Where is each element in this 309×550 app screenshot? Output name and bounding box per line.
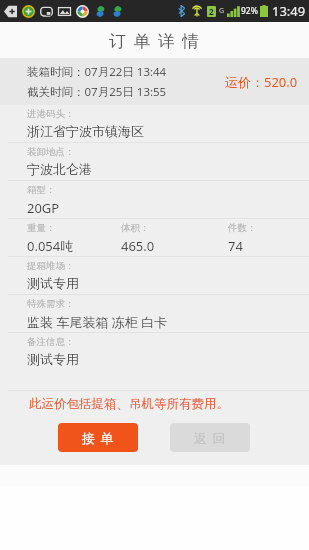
staticText: 订 单 详 情	[109, 29, 201, 52]
staticText: 特殊需求：	[27, 298, 75, 310]
button[interactable]: 返 回	[170, 423, 250, 452]
staticText: 返 回	[194, 429, 227, 447]
staticText: 重量：	[27, 222, 56, 234]
staticText: G	[219, 6, 225, 16]
staticText: 测试专用	[27, 351, 79, 367]
button[interactable]: 备注信息：	[0, 333, 309, 370]
staticText: 监装 车尾装箱 冻柜 白卡	[27, 313, 168, 331]
staticText: 2	[209, 6, 214, 17]
staticText: 此运价包括提箱、吊机等所有费用。	[29, 396, 229, 412]
button[interactable]: 特殊需求：	[0, 295, 309, 332]
button[interactable]: 装卸地点：	[0, 143, 309, 180]
staticText: 体积：	[121, 222, 150, 234]
button[interactable]: 提箱堆场：	[0, 257, 309, 294]
staticText: 装箱时间：07月22日 13:44	[27, 64, 167, 80]
button[interactable]: 重量：	[0, 219, 309, 256]
staticText: 备注信息：	[27, 336, 75, 348]
staticText: 箱型：	[27, 184, 56, 196]
button[interactable]: 进港码头：	[0, 105, 309, 142]
staticText: 浙江省宁波市镇海区	[27, 123, 144, 139]
staticText: 截关时间：07月25日 13:55	[27, 84, 167, 100]
staticText: 接 单	[82, 429, 115, 447]
staticText: 0.054吨	[27, 237, 74, 255]
staticText: 74	[228, 237, 243, 255]
staticText: 92%	[241, 5, 258, 17]
button[interactable]: 箱型：	[0, 181, 309, 218]
staticText: 运价：520.0	[225, 73, 298, 91]
staticText: 装卸地点：	[27, 146, 75, 158]
staticText: 测试专用	[27, 275, 79, 291]
staticText: 20GP	[27, 199, 60, 217]
staticText: 13:49	[272, 2, 306, 20]
button[interactable]: 接 单	[58, 423, 138, 452]
staticText: 宁波北仑港	[27, 161, 92, 177]
staticText: 465.0	[121, 237, 155, 255]
staticText: 件数：	[228, 222, 257, 234]
staticText: 进港码头：	[27, 108, 75, 120]
staticText: 提箱堆场：	[27, 260, 75, 272]
